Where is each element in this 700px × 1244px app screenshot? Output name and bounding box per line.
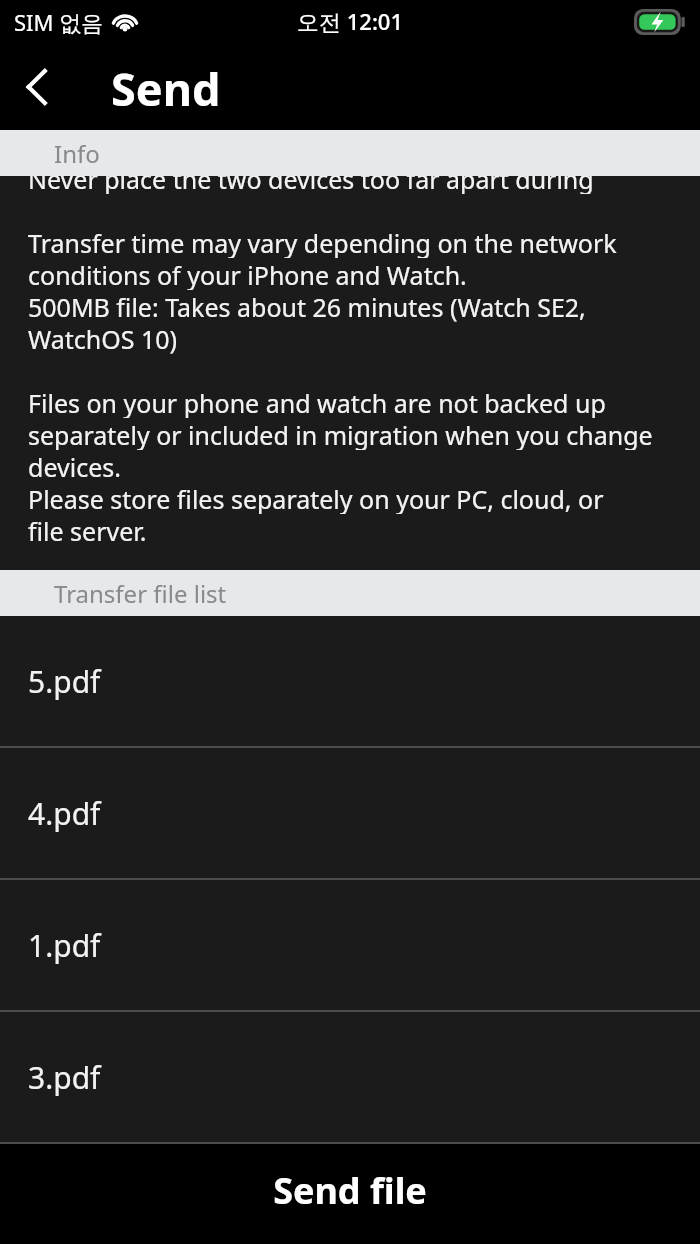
staticText: 5.pdf (28, 661, 101, 702)
staticText: 3.pdf (28, 1057, 101, 1098)
staticText: Please store files separately on your PC… (28, 482, 604, 514)
button[interactable]: Send file (0, 1144, 700, 1244)
staticText: Send file (273, 1166, 427, 1215)
staticText: Files on your phone and watch are not ba… (28, 386, 606, 418)
staticText: Transfer time may vary depending on the … (28, 226, 617, 258)
staticText: Never place the two devices too far apar… (28, 176, 680, 194)
staticText: file server. (28, 514, 147, 546)
staticText: WatchOS 10) (28, 322, 178, 354)
button[interactable]: 4.pdf (0, 748, 700, 878)
staticText: 4.pdf (28, 793, 101, 834)
staticText: Info (54, 137, 100, 170)
staticText: 1.pdf (28, 925, 101, 966)
button[interactable]: 5.pdf (0, 616, 700, 746)
button[interactable]: 3.pdf (0, 1012, 700, 1142)
staticText: Send (111, 58, 221, 119)
staticText: devices. (28, 450, 121, 482)
staticText: separately or included in migration when… (28, 418, 653, 450)
button[interactable]: 1.pdf (0, 880, 700, 1010)
staticText: 500MB file: Takes about 26 minutes (Watc… (28, 290, 586, 322)
staticText: conditions of your iPhone and Watch. (28, 258, 467, 290)
staticText: 오전 12:01 (297, 6, 404, 36)
staticText: SIM 없음 (14, 7, 104, 37)
staticText: Transfer file list (54, 577, 227, 610)
button[interactable]: Back (0, 44, 74, 130)
